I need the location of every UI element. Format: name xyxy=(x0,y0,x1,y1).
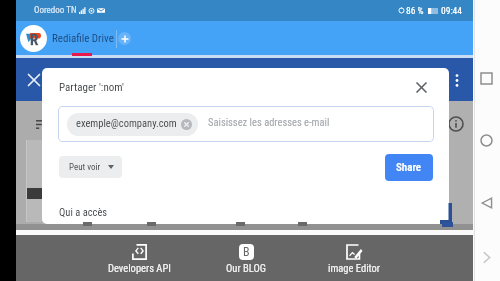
staticText: R xyxy=(30,31,39,48)
button[interactable]: Close xyxy=(23,69,45,91)
button[interactable]: B xyxy=(198,235,294,281)
button[interactable]: App logo xyxy=(20,25,47,52)
button[interactable]: exemple@company.com xyxy=(58,106,434,142)
staticText: Developers API xyxy=(108,262,171,274)
staticText: 09:44 xyxy=(441,5,462,16)
button[interactable]: Back xyxy=(473,190,500,216)
staticText: exemple@company.com xyxy=(76,117,177,129)
staticText: Peut voir xyxy=(69,162,101,173)
staticText: B xyxy=(243,245,250,259)
staticText: image Editor xyxy=(328,262,381,274)
staticText: Our BLOG xyxy=(226,262,266,274)
button[interactable]: Expand xyxy=(473,244,500,270)
button[interactable]: image Editor xyxy=(306,235,402,281)
staticText: Ooredoo TN xyxy=(34,5,77,16)
button[interactable]: Peut voir xyxy=(59,156,122,178)
staticText: Share xyxy=(396,161,422,174)
staticText: Saisissez les adresses e-mail xyxy=(208,116,330,128)
button[interactable]: Qui a accès xyxy=(59,201,108,223)
staticText: 86 % xyxy=(406,5,424,16)
button[interactable]: Share xyxy=(385,154,433,181)
staticText: Partager ':nom' xyxy=(59,81,124,94)
button[interactable]: More options xyxy=(448,68,466,92)
button[interactable]: Add xyxy=(118,32,131,45)
button[interactable]: Close dialog xyxy=(410,76,432,98)
staticText: Rediafile Drive xyxy=(52,32,114,45)
button[interactable]: Rediafile Drive xyxy=(52,22,114,54)
staticText: Qui a accès xyxy=(59,206,108,218)
button[interactable]: Recents xyxy=(473,65,500,91)
button[interactable]: Developers API xyxy=(91,235,187,281)
button[interactable]: Home xyxy=(473,127,500,153)
